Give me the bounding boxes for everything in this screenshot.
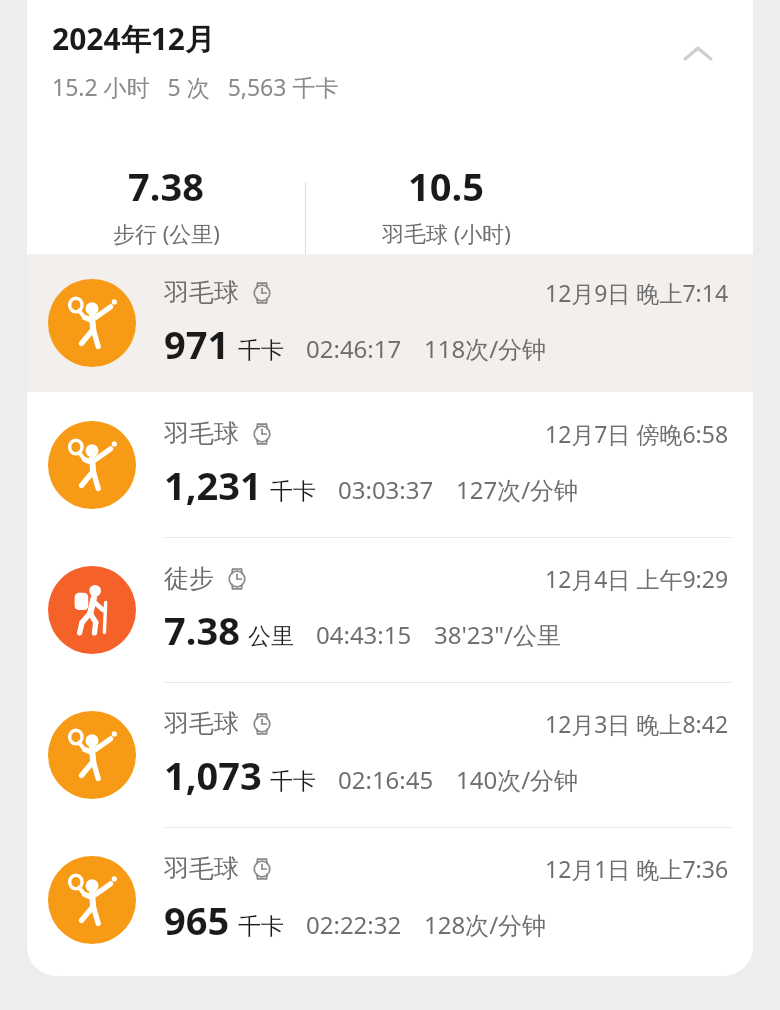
- staticText: 1,231: [164, 459, 262, 511]
- staticText: 971: [164, 318, 230, 370]
- button[interactable]: 羽毛球: [27, 827, 753, 972]
- staticText: 7.38: [164, 604, 240, 656]
- staticText: 10.5: [408, 160, 484, 212]
- staticText: 步行 (公里): [113, 218, 220, 248]
- button[interactable]: 羽毛球: [27, 682, 753, 827]
- staticText: 02:22:32: [306, 908, 402, 941]
- button[interactable]: 10.5: [306, 160, 586, 248]
- staticText: 千卡: [238, 336, 284, 365]
- staticText: 02:16:45: [338, 763, 434, 796]
- staticText: 羽毛球: [164, 708, 239, 739]
- staticText: 03:03:37: [338, 473, 434, 506]
- button[interactable]: 羽毛球: [27, 254, 753, 392]
- staticText: 羽毛球 (小时): [382, 218, 511, 248]
- staticText: 118次/分钟: [424, 332, 547, 365]
- staticText: 12月7日 傍晚6:58: [545, 418, 729, 449]
- staticText: 羽毛球: [164, 418, 239, 449]
- staticText: 02:46:17: [306, 332, 402, 365]
- button[interactable]: 羽毛球: [27, 392, 753, 537]
- staticText: 127次/分钟: [456, 473, 579, 506]
- staticText: 04:43:15: [316, 618, 412, 651]
- staticText: 千卡: [238, 912, 284, 941]
- staticText: 千卡: [270, 767, 316, 796]
- staticText: 2024年12月: [52, 18, 215, 59]
- staticText: 12月9日 晚上7:14: [545, 277, 729, 308]
- staticText: 128次/分钟: [424, 908, 547, 941]
- button[interactable]: 徒步: [27, 537, 753, 682]
- staticText: 7.38: [128, 160, 204, 212]
- button[interactable]: Collapse: [673, 30, 723, 80]
- staticText: 羽毛球: [164, 277, 239, 308]
- staticText: 140次/分钟: [456, 763, 579, 796]
- staticText: 1,073: [164, 749, 262, 801]
- staticText: 12月1日 晚上7:36: [545, 853, 729, 884]
- button[interactable]: 2024年12月: [27, 0, 753, 254]
- staticText: 公里: [248, 622, 294, 651]
- button[interactable]: 7.38: [27, 160, 305, 248]
- staticText: 徒步: [164, 563, 214, 594]
- staticText: 38'23"/公里: [434, 618, 562, 651]
- staticText: 羽毛球: [164, 853, 239, 884]
- staticText: 千卡: [270, 477, 316, 506]
- staticText: 12月3日 晚上8:42: [545, 708, 729, 739]
- staticText: 965: [164, 894, 230, 946]
- staticText: 12月4日 上午9:29: [545, 563, 729, 594]
- staticText: 15.2 小时 5 次 5,563 千卡: [52, 71, 339, 102]
